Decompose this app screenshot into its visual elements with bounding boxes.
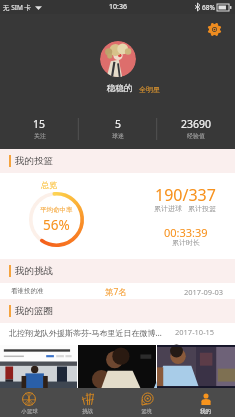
button[interactable]: 15 bbox=[0, 117, 79, 140]
button[interactable]: News image 2 bbox=[78, 345, 156, 388]
staticText: 无 SIM 卡 bbox=[3, 3, 32, 12]
staticText: 00:33:39 bbox=[164, 225, 208, 240]
button[interactable]: 北控翔龙队外援斯蒂芬-马布里近日在微博… bbox=[0, 323, 235, 345]
button[interactable]: 5 bbox=[79, 117, 157, 140]
button[interactable]: News image 1 bbox=[0, 345, 77, 388]
button[interactable]: 23690 bbox=[157, 117, 235, 140]
staticText: 第7名 bbox=[105, 286, 127, 298]
button[interactable]: Settings bbox=[203, 18, 225, 40]
staticText: 平均命中率 bbox=[40, 206, 73, 214]
button[interactable]: 我的 bbox=[176, 388, 235, 417]
staticText: 篮境 bbox=[141, 408, 152, 415]
staticText: 68% bbox=[202, 3, 215, 12]
staticText: 10:36 bbox=[109, 2, 127, 12]
button[interactable]: 小篮球 bbox=[0, 388, 58, 417]
staticText: 我的篮圈 bbox=[15, 305, 53, 317]
button[interactable]: Profile photo bbox=[100, 41, 136, 77]
staticText: 累计投篮 bbox=[188, 204, 216, 213]
staticText: 累计进球 bbox=[154, 204, 182, 213]
staticText: 关注 bbox=[34, 132, 46, 140]
staticText: 稳稳的 bbox=[107, 83, 133, 94]
staticText: 2017-09-03 bbox=[184, 287, 224, 297]
staticText: 挑战 bbox=[82, 408, 93, 415]
staticText: 总览 bbox=[41, 180, 57, 190]
staticText: 球迷 bbox=[112, 132, 124, 140]
staticText: 我的投篮 bbox=[15, 155, 53, 167]
staticText: 2017-10-15 bbox=[175, 327, 215, 337]
staticText: 经验值 bbox=[187, 132, 205, 140]
button[interactable]: 看谁投的准 bbox=[0, 283, 235, 299]
staticText: 全明星 bbox=[139, 85, 160, 94]
button[interactable]: 挑战 bbox=[58, 388, 117, 417]
staticText: 北控翔龙队外援斯蒂芬-马布里近日在微博… bbox=[9, 327, 162, 338]
staticText: 23690 bbox=[181, 117, 212, 131]
staticText: 看谁投的准 bbox=[11, 287, 44, 295]
staticText: 5 bbox=[115, 117, 122, 131]
staticText: 累计时长 bbox=[172, 238, 200, 247]
staticText: 小篮球 bbox=[21, 408, 38, 415]
staticText: 190/337 bbox=[155, 184, 216, 206]
staticText: 56% bbox=[43, 216, 70, 234]
staticText: 15 bbox=[33, 117, 46, 131]
staticText: 我的挑战 bbox=[15, 265, 53, 277]
button[interactable]: News image 3 bbox=[157, 345, 235, 388]
staticText: 我的 bbox=[200, 408, 211, 415]
button[interactable]: 篮境 bbox=[117, 388, 176, 417]
